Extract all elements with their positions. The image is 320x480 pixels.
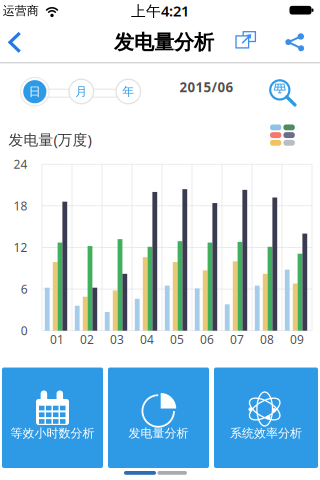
button[interactable]: 分享: [285, 32, 305, 50]
staticText: 等效小时数分析: [10, 426, 94, 440]
button[interactable]: 发电量分析: [108, 367, 209, 468]
staticText: 06: [200, 331, 214, 347]
staticText: 系统效率分析: [230, 426, 302, 440]
staticText: 09: [290, 331, 304, 347]
button[interactable]: 返回: [6, 29, 30, 55]
staticText: 04: [140, 331, 154, 347]
staticText: 发电量(万度): [8, 130, 91, 149]
button[interactable]: 年: [116, 79, 141, 104]
staticText: 01: [50, 331, 64, 347]
staticText: 0: [21, 323, 28, 339]
staticText: 02: [80, 331, 94, 347]
staticText: 05: [170, 331, 184, 347]
staticText: 日: [29, 84, 41, 99]
staticText: 年: [122, 84, 134, 99]
staticText: 发电量分析: [128, 426, 188, 440]
button[interactable]: 导出: [235, 31, 261, 55]
staticText: 运营商: [3, 3, 39, 18]
staticText: 07: [230, 331, 244, 347]
button[interactable]: 等效小时数分析: [2, 367, 103, 468]
button[interactable]: 日: [20, 77, 50, 107]
button[interactable]: 系统效率分析: [214, 367, 318, 468]
staticText: 上午4:21: [131, 1, 189, 21]
staticText: 08: [260, 331, 274, 347]
button[interactable]: 月: [69, 79, 94, 104]
staticText: 发电量分析: [114, 30, 214, 55]
staticText: 03: [110, 331, 124, 347]
button[interactable]: 查询: [263, 74, 303, 116]
staticText: 24: [13, 156, 27, 172]
staticText: 6: [21, 281, 28, 297]
staticText: 12: [13, 239, 27, 255]
staticText: 月: [75, 84, 87, 99]
staticText: 2015/06: [179, 78, 233, 96]
staticText: 18: [13, 198, 27, 214]
